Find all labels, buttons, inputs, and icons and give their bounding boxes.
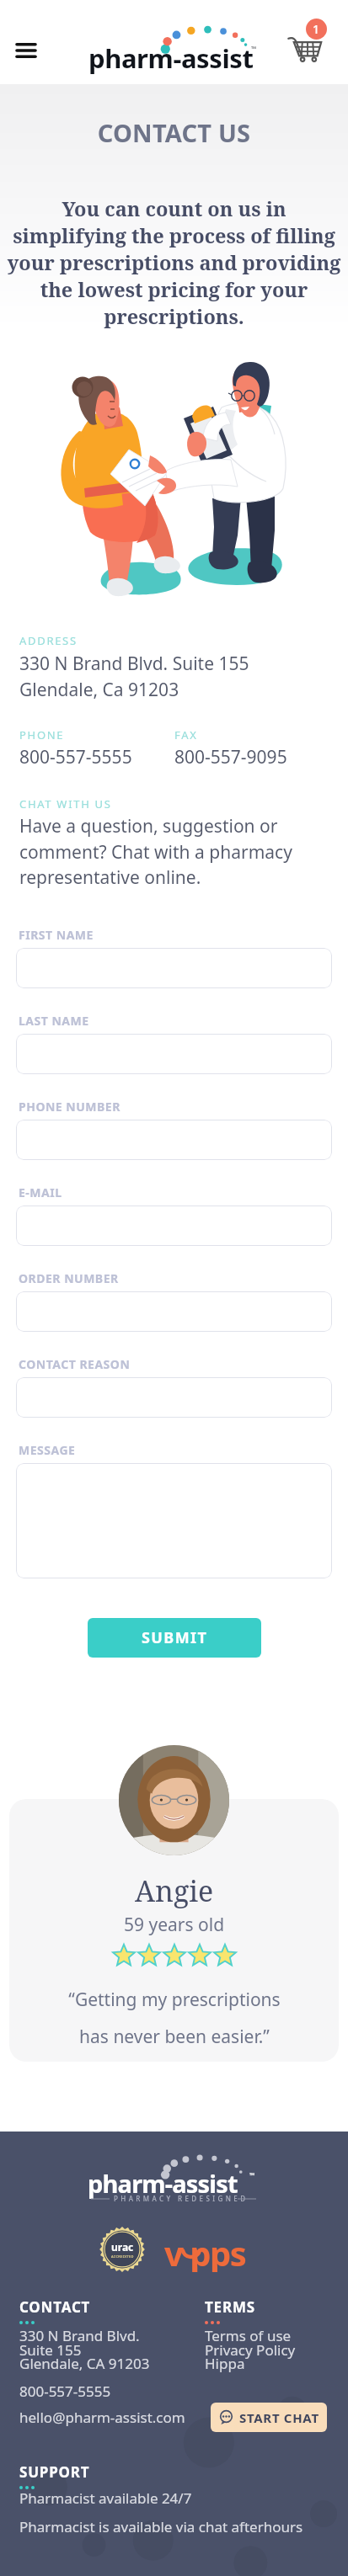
staticText: CONTACT US bbox=[0, 116, 348, 149]
staticText: FIRST NAME bbox=[19, 927, 94, 943]
staticText: pharm-assist bbox=[88, 2167, 238, 2200]
staticText: v pps bbox=[164, 2230, 246, 2272]
staticText: PHONE NUMBER bbox=[19, 1099, 120, 1115]
staticText: MESSAGE bbox=[19, 1442, 76, 1458]
staticText: LAST NAME bbox=[19, 1013, 89, 1029]
staticText: CONTACT REASON bbox=[19, 1356, 131, 1372]
staticText: ACCREDITED bbox=[111, 2254, 134, 2259]
staticText: Terms of use Privacy Policy Hippa bbox=[205, 2326, 296, 2373]
staticText: CONTACT bbox=[19, 2297, 91, 2317]
staticText: 59 years old bbox=[124, 1913, 225, 1937]
staticText: ™ bbox=[251, 44, 257, 53]
staticText: PHONE bbox=[19, 727, 65, 742]
staticText: ADDRESS bbox=[19, 633, 78, 648]
button[interactable] bbox=[16, 948, 332, 988]
staticText: 1 bbox=[313, 21, 320, 37]
staticText: CHAT WITH US bbox=[19, 796, 112, 812]
staticText: START CHAT bbox=[239, 2409, 319, 2426]
staticText: Angie bbox=[135, 1871, 214, 1910]
button[interactable] bbox=[16, 1206, 332, 1246]
staticText: Pharmacist available 24/7 bbox=[19, 2488, 192, 2508]
staticText: ™ bbox=[249, 2170, 255, 2179]
button[interactable]: Menu bbox=[7, 35, 46, 66]
button[interactable]: Shopping cart bbox=[285, 19, 330, 64]
staticText: 330 N Brand Blvd. Suite 155 Glendale, CA… bbox=[19, 2326, 150, 2373]
staticText: ORDER NUMBER bbox=[19, 1270, 119, 1286]
button[interactable] bbox=[16, 1120, 332, 1160]
button[interactable] bbox=[16, 1034, 332, 1074]
staticText: You can count on us in simplifying the p… bbox=[0, 195, 348, 330]
staticText: 800-557-9095 bbox=[174, 745, 287, 769]
button[interactable] bbox=[16, 1463, 332, 1578]
staticText: Have a question, suggestion or comment? … bbox=[19, 814, 331, 889]
staticText: TERMS bbox=[205, 2297, 255, 2317]
staticText: “Getting my prescriptions has never been… bbox=[68, 1988, 281, 2048]
button[interactable] bbox=[16, 1377, 332, 1418]
staticText: FAX bbox=[174, 727, 198, 742]
staticText: SUPPORT bbox=[19, 2462, 90, 2482]
staticText: urac bbox=[111, 2240, 134, 2254]
button[interactable]: START CHAT bbox=[211, 2403, 327, 2432]
button[interactable] bbox=[16, 1291, 332, 1332]
staticText: SUBMIT bbox=[142, 1627, 208, 1648]
staticText: 800-557-5555 bbox=[19, 745, 132, 769]
staticText: E-MAIL bbox=[19, 1184, 62, 1200]
staticText: hello@pharm-assist.com bbox=[19, 2408, 185, 2427]
button[interactable]: SUBMIT bbox=[88, 1618, 261, 1658]
staticText: 330 N Brand Blvd. Suite 155 Glendale, Ca… bbox=[19, 652, 249, 701]
staticText: Pharmacist is available via chat afterho… bbox=[19, 2517, 303, 2536]
staticText: 800-557-5555 bbox=[19, 2382, 111, 2401]
staticText: pharm-assist bbox=[88, 40, 254, 76]
staticText: PHARMACY REDESIGNED bbox=[114, 2194, 249, 2203]
